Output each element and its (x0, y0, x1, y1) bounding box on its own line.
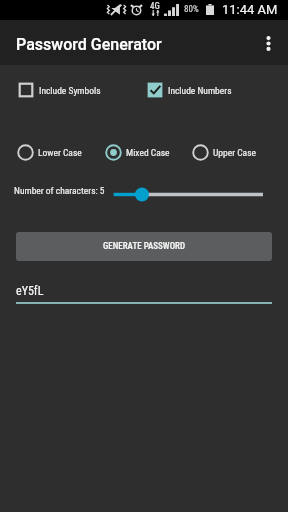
staticText: 4G (150, 1, 160, 12)
button[interactable]: Generated password (0, 284, 288, 306)
button[interactable]: GENERATE PASSWORD (16, 232, 272, 261)
staticText: 80% (184, 4, 199, 15)
button[interactable]: Include Numbers (147, 80, 232, 100)
button[interactable]: Upper Case (192, 142, 256, 162)
staticText: Password Generator (16, 35, 162, 54)
staticText: Lower Case (38, 147, 82, 158)
button[interactable]: Mixed Case (105, 142, 170, 162)
button[interactable]: Lower Case (17, 142, 82, 162)
staticText: Number of characters: 5 (14, 185, 105, 196)
button[interactable]: More options (248, 23, 288, 63)
staticText: eY5fL (16, 284, 44, 298)
button[interactable]: Number of characters slider (106, 184, 270, 204)
staticText: GENERATE PASSWORD (103, 241, 186, 252)
button[interactable]: Include Symbols (18, 80, 101, 100)
staticText: 11:44 AM (222, 2, 278, 17)
staticText: Include Numbers (168, 85, 232, 96)
staticText: Upper Case (213, 147, 256, 158)
staticText: Mixed Case (126, 147, 170, 158)
staticText: Include Symbols (39, 85, 101, 96)
